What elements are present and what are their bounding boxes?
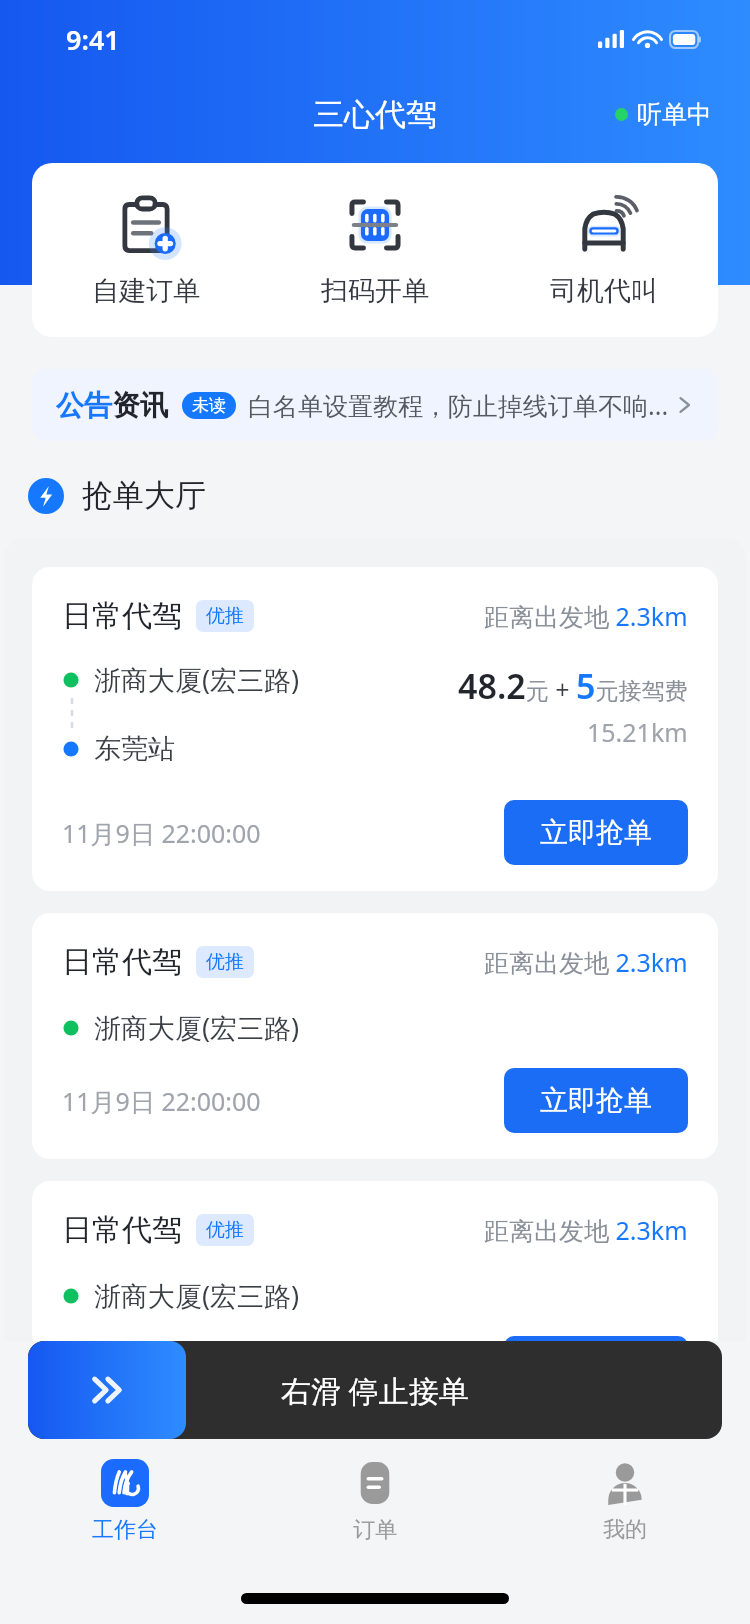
staticText: 距离出发地 2.3km [484,599,688,633]
staticText: 11月9日 22:00:00 [62,1084,261,1118]
staticText: 订单 [353,1516,397,1544]
button[interactable]: 右滑 停止接单 [28,1341,722,1439]
staticText: 日常代驾 [62,1211,182,1249]
other: Swipe right to stop receiving orders [28,1341,186,1439]
button[interactable]: 司机代叫 [489,163,718,337]
staticText: 我的 [603,1516,647,1544]
staticText: 优推 [206,950,244,974]
staticText: 日常代驾 [62,943,182,981]
staticText: 优推 [206,1218,244,1242]
staticText: 浙商大厦(宏三路) [94,1009,300,1046]
staticText: 右滑 停止接单 [281,1370,469,1411]
staticText: 48.2元 + 5元接驾费 [458,663,688,709]
staticText: 听单中 [637,99,712,130]
staticText: 优推 [206,604,244,628]
button[interactable]: 抢单大厅 [28,476,206,515]
staticText: 距离出发地 2.3km [484,945,688,979]
button[interactable]: 日常代驾 [32,913,718,1159]
button[interactable]: 立即抢单 [504,1336,688,1401]
staticText: 白名单设置教程，防止掉线订单不响... [248,388,669,422]
staticText: 公告资讯 [56,388,168,423]
staticText: 11月9日 22:00:00 [62,1352,261,1386]
button[interactable]: 我的 [500,1457,750,1565]
button[interactable]: 扫码开单 [260,163,489,337]
button[interactable]: 日常代驾 [32,1181,718,1427]
staticText: 自建订单 [92,274,200,308]
button[interactable]: 公告资讯 [32,369,718,441]
staticText: 15.21km [587,715,688,749]
staticText: 东莞站 [94,732,175,766]
button[interactable]: 订单 [250,1457,500,1565]
staticText: 11月9日 22:00:00 [62,816,261,850]
button[interactable]: 自建订单 [32,163,260,337]
button[interactable]: 立即抢单 [504,800,688,865]
button[interactable]: 日常代驾 [32,567,718,891]
staticText: 9:41 [66,21,120,58]
staticText: 司机代叫 [550,274,658,308]
staticText: 扫码开单 [321,274,429,308]
staticText: 抢单大厅 [82,476,206,515]
staticText: 三心代驾 [313,95,437,134]
staticText: 浙商大厦(宏三路) [94,661,300,698]
button[interactable]: 立即抢单 [504,1068,688,1133]
staticText: 工作台 [92,1516,158,1544]
staticText: 立即抢单 [540,815,652,850]
staticText: 距离出发地 2.3km [484,1213,688,1247]
staticText: 未读 [192,395,226,416]
button[interactable]: 工作台 [0,1457,250,1565]
button[interactable]: 听单中 [611,93,716,136]
staticText: 浙商大厦(宏三路) [94,1277,300,1314]
staticText: 日常代驾 [62,597,182,635]
staticText: 立即抢单 [540,1083,652,1118]
